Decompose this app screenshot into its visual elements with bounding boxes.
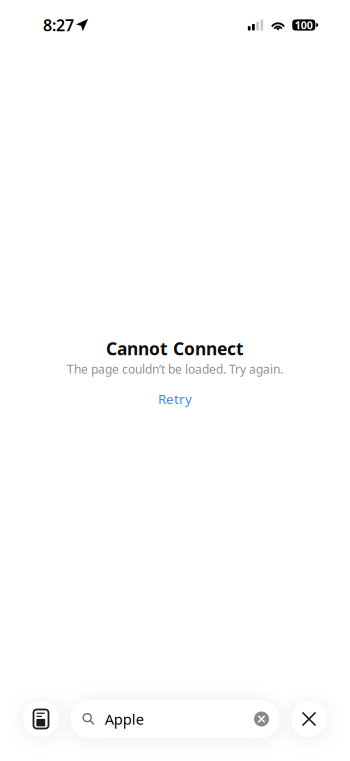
button[interactable]: Retry <box>148 377 202 411</box>
button[interactable]: Close <box>291 701 327 737</box>
staticText: The page couldn’t be loaded. Try again. <box>67 361 283 377</box>
button[interactable]: Apple <box>70 700 279 738</box>
staticText: Retry <box>158 390 192 408</box>
staticText: 8:27 <box>43 14 74 36</box>
staticText: 100 <box>295 18 313 32</box>
button[interactable]: Clear text <box>251 709 271 729</box>
staticText: Apple <box>105 709 144 729</box>
staticText: Cannot Connect <box>106 337 244 360</box>
button[interactable]: Page Settings <box>23 701 59 737</box>
